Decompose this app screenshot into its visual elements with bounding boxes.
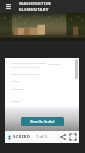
button[interactable]: Menu — [0, 0, 16, 13]
button[interactable]: Fullscreen — [68, 132, 78, 142]
staticText: SCRIBD — [13, 134, 31, 140]
staticText: ELEMENTARY — [19, 7, 49, 13]
button[interactable]: View On Scribd — [21, 117, 64, 126]
button[interactable]: Share — [58, 132, 68, 142]
staticText: View On Scribd — [30, 119, 55, 124]
staticText: 1 of 3 — [36, 134, 47, 140]
staticText: WASHINGTON — [19, 1, 51, 7]
